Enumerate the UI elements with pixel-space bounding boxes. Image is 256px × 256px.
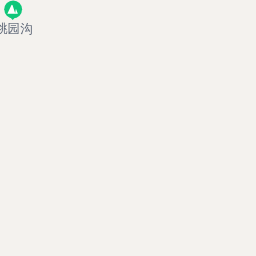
button[interactable]: 桃园沟 scenic spot marker xyxy=(0,0,256,256)
staticText: 桃园沟 xyxy=(0,21,33,37)
